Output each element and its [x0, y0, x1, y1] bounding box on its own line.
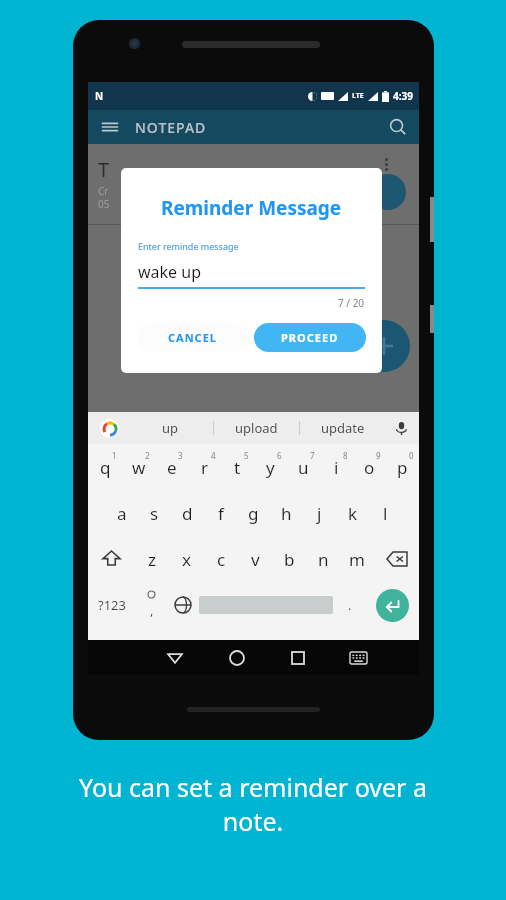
button[interactable]: h: [270, 490, 303, 536]
button[interactable]: u: [287, 444, 320, 490]
staticText: 8: [343, 450, 348, 461]
button[interactable]: t: [221, 444, 254, 490]
staticText: x: [182, 548, 191, 571]
button[interactable]: Voice input: [395, 422, 408, 435]
button[interactable]: b: [272, 536, 306, 582]
staticText: .: [348, 596, 352, 614]
staticText: v: [251, 548, 260, 571]
button[interactable]: r: [188, 444, 221, 490]
staticText: 9: [376, 450, 381, 461]
staticText: b: [284, 548, 295, 571]
staticText: up: [162, 419, 179, 437]
button[interactable]: y: [254, 444, 287, 490]
button[interactable]: Add note: [358, 320, 410, 372]
button[interactable]: n: [306, 536, 340, 582]
button[interactable]: s: [138, 490, 171, 536]
button[interactable]: g: [237, 490, 270, 536]
staticText: 0: [409, 450, 414, 461]
staticText: LTE: [352, 91, 364, 101]
button[interactable]: CANCEL: [137, 323, 247, 352]
staticText: k: [348, 502, 358, 525]
button[interactable]: c: [204, 536, 238, 582]
button[interactable]: o: [353, 444, 386, 490]
staticText: wake up: [138, 261, 202, 283]
staticText: PROCEED: [281, 330, 339, 345]
button[interactable]: j: [303, 490, 336, 536]
staticText: g: [248, 502, 259, 525]
staticText: o: [364, 456, 375, 479]
staticText: 2: [145, 450, 150, 461]
staticText: a: [117, 502, 127, 525]
staticText: NOTEPAD: [135, 118, 207, 137]
button[interactable]: upload: [214, 412, 299, 444]
staticText: p: [397, 456, 408, 479]
staticText: w: [132, 456, 146, 479]
button[interactable]: Enter: [376, 589, 409, 622]
button[interactable]: up: [128, 412, 213, 444]
staticText: You can set a reminder over a note.: [24, 770, 482, 838]
button[interactable]: Back: [144, 640, 206, 675]
staticText: z: [148, 548, 156, 571]
button[interactable]: ?123: [88, 582, 136, 628]
button[interactable]: ,: [136, 582, 166, 628]
staticText: n: [318, 548, 329, 571]
staticText: d: [182, 502, 193, 525]
staticText: c: [217, 548, 226, 571]
button[interactable]: Backspace: [374, 536, 419, 582]
button[interactable]: z: [134, 536, 169, 582]
button[interactable]: e: [155, 444, 188, 490]
staticText: 7 / 20: [338, 296, 365, 310]
button[interactable]: v: [238, 536, 272, 582]
button[interactable]: w: [122, 444, 155, 490]
staticText: 7: [310, 450, 315, 461]
button[interactable]: l: [369, 490, 402, 536]
button[interactable]: i: [320, 444, 353, 490]
button[interactable]: f: [204, 490, 237, 536]
button[interactable]: p: [386, 444, 419, 490]
staticText: Cr: [98, 184, 109, 198]
button[interactable]: q: [88, 444, 122, 490]
button[interactable]: m: [340, 536, 374, 582]
staticText: 6: [277, 450, 282, 461]
staticText: 4: [211, 450, 216, 461]
staticText: T: [98, 156, 110, 183]
staticText: t: [234, 456, 241, 479]
staticText: s: [150, 502, 159, 525]
button[interactable]: Change language: [166, 582, 199, 628]
button[interactable]: PROCEED: [254, 323, 366, 352]
staticText: 3: [178, 450, 183, 461]
staticText: u: [298, 456, 309, 479]
button[interactable]: Hide keyboard: [328, 640, 389, 675]
button[interactable]: Search: [389, 118, 407, 136]
staticText: r: [201, 456, 209, 479]
staticText: y: [266, 456, 275, 479]
button[interactable]: .: [333, 582, 366, 628]
button[interactable]: Recents: [267, 640, 328, 675]
button[interactable]: Home: [206, 640, 267, 675]
staticText: ?123: [98, 596, 126, 614]
staticText: i: [334, 456, 339, 479]
button[interactable]: k: [336, 490, 369, 536]
staticText: 5: [244, 450, 249, 461]
staticText: 05: [98, 197, 110, 211]
button[interactable]: update: [300, 412, 385, 444]
staticText: q: [100, 456, 111, 479]
staticText: Reminder Message: [161, 195, 342, 221]
staticText: N: [95, 89, 104, 103]
staticText: j: [317, 502, 322, 525]
staticText: 1: [112, 450, 117, 461]
staticText: h: [281, 502, 292, 525]
button[interactable]: a: [105, 490, 138, 536]
staticText: CANCEL: [168, 330, 217, 345]
button[interactable]: Menu: [100, 117, 120, 137]
button[interactable]: Google: [100, 419, 119, 438]
button[interactable]: x: [169, 536, 204, 582]
staticText: Enter reminde message: [138, 240, 239, 252]
staticText: e: [167, 456, 177, 479]
staticText: f: [218, 502, 224, 525]
button[interactable]: d: [171, 490, 204, 536]
staticText: 4:39: [393, 89, 413, 103]
staticText: m: [349, 548, 365, 571]
button[interactable]: Shift: [88, 536, 134, 582]
